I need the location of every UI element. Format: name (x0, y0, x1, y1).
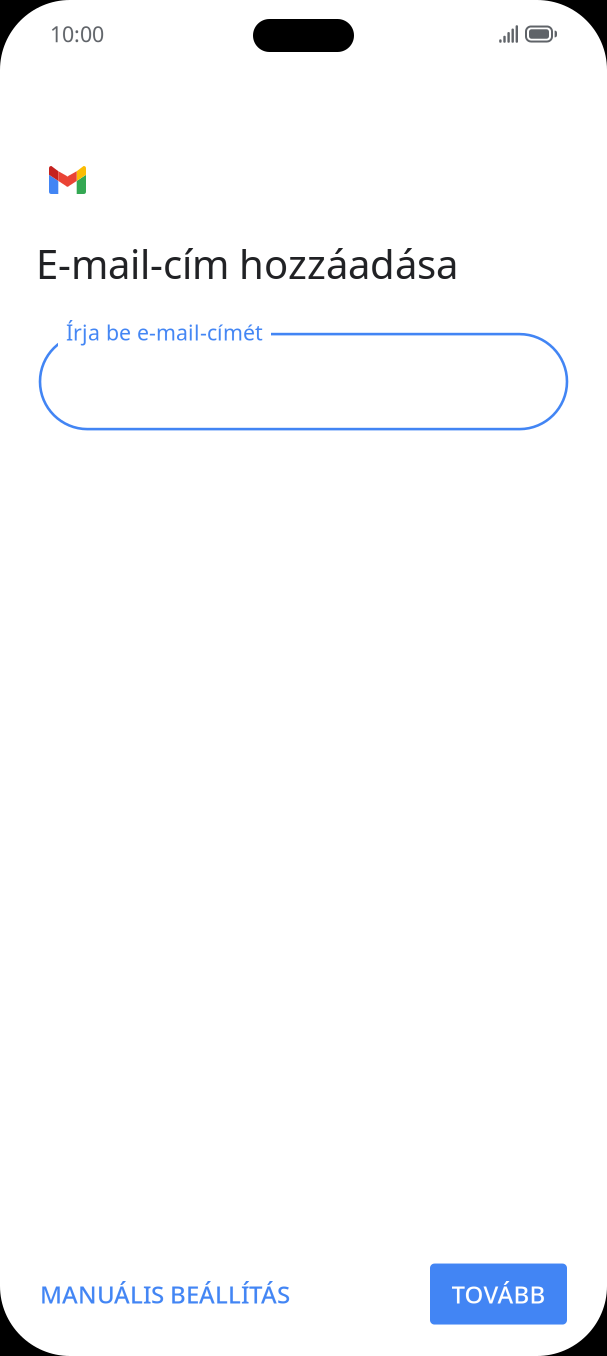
staticText: MANUÁLIS BEÁLLÍTÁS (40, 1278, 290, 1310)
button[interactable]: MANUÁLIS BEÁLLÍTÁS (26, 1262, 304, 1326)
button[interactable]: TOVÁBB (430, 1264, 567, 1325)
staticText: Írja be e-mail-címét (66, 318, 263, 346)
staticText: TOVÁBB (451, 1278, 545, 1310)
staticText: E-mail-cím hozzáadása (36, 237, 458, 290)
button[interactable]: Írja be e-mail-címét (40, 318, 567, 429)
staticText: 10:00 (50, 20, 104, 48)
